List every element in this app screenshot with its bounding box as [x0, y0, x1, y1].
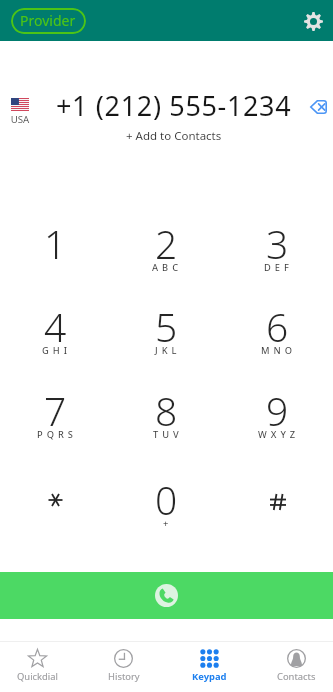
staticText: Provider	[20, 11, 76, 30]
button[interactable]: Backspace	[304, 93, 332, 121]
button[interactable]: History	[82, 642, 165, 692]
staticText: DEF	[264, 261, 293, 274]
button[interactable]: 9	[222, 384, 333, 468]
button[interactable]	[0, 473, 111, 557]
button[interactable]	[222, 473, 333, 557]
staticText: ABC	[152, 261, 183, 274]
button[interactable]: Provider	[11, 8, 86, 34]
button[interactable]: 1	[0, 217, 111, 301]
staticText: 9	[266, 384, 289, 437]
button[interactable]: 7	[0, 384, 111, 468]
staticText: 3	[266, 217, 289, 270]
staticText: + Add to Contacts	[126, 128, 222, 144]
button[interactable]: Keypad	[168, 642, 251, 692]
staticText: GHI	[42, 344, 72, 357]
staticText: History	[108, 670, 140, 683]
staticText: 1	[44, 217, 67, 270]
button[interactable]: 2	[111, 217, 222, 301]
button[interactable]: + Add to Contacts	[44, 128, 304, 144]
staticText: PQRS	[37, 428, 77, 441]
staticText: 8	[155, 384, 178, 437]
staticText: Keypad	[192, 670, 227, 683]
staticText: 2	[155, 217, 178, 270]
button[interactable]: 8	[111, 384, 222, 468]
staticText: +	[163, 517, 173, 530]
button[interactable]: Settings	[302, 10, 324, 32]
staticText: 5	[155, 300, 178, 353]
button[interactable]: Call	[0, 572, 333, 619]
staticText: Quickdial	[17, 670, 58, 683]
staticText: MNO	[261, 344, 297, 357]
button[interactable]: Quickdial	[0, 642, 79, 692]
staticText: WXYZ	[258, 428, 300, 441]
staticText: +1 (212) 555-1234	[56, 87, 292, 124]
button[interactable]: 6	[222, 300, 333, 384]
staticText: USA	[10, 113, 30, 126]
staticText: TUV	[153, 428, 183, 441]
staticText: Contacts	[277, 670, 316, 683]
staticText: 4	[44, 300, 67, 353]
staticText: 6	[266, 300, 289, 353]
staticText: JKL	[155, 344, 181, 357]
button[interactable]: 3	[222, 217, 333, 301]
staticText: 7	[44, 384, 67, 437]
button[interactable]: 5	[111, 300, 222, 384]
button[interactable]: 4	[0, 300, 111, 384]
button[interactable]: 0	[111, 473, 222, 557]
staticText: 0	[155, 473, 178, 526]
button[interactable]: Contacts	[255, 642, 333, 692]
